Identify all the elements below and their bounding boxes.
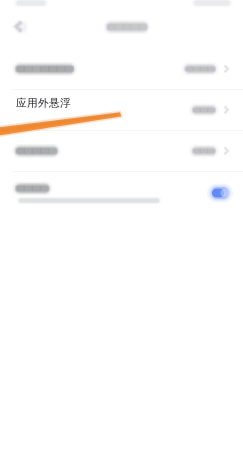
button[interactable] [0,49,243,89]
button[interactable]: Back [6,12,36,42]
staticText: 应用外悬浮 [16,96,71,109]
button[interactable]: Toggle floating window [207,183,233,202]
button[interactable] [0,131,243,171]
button[interactable]: 应用外悬浮 [0,90,243,130]
